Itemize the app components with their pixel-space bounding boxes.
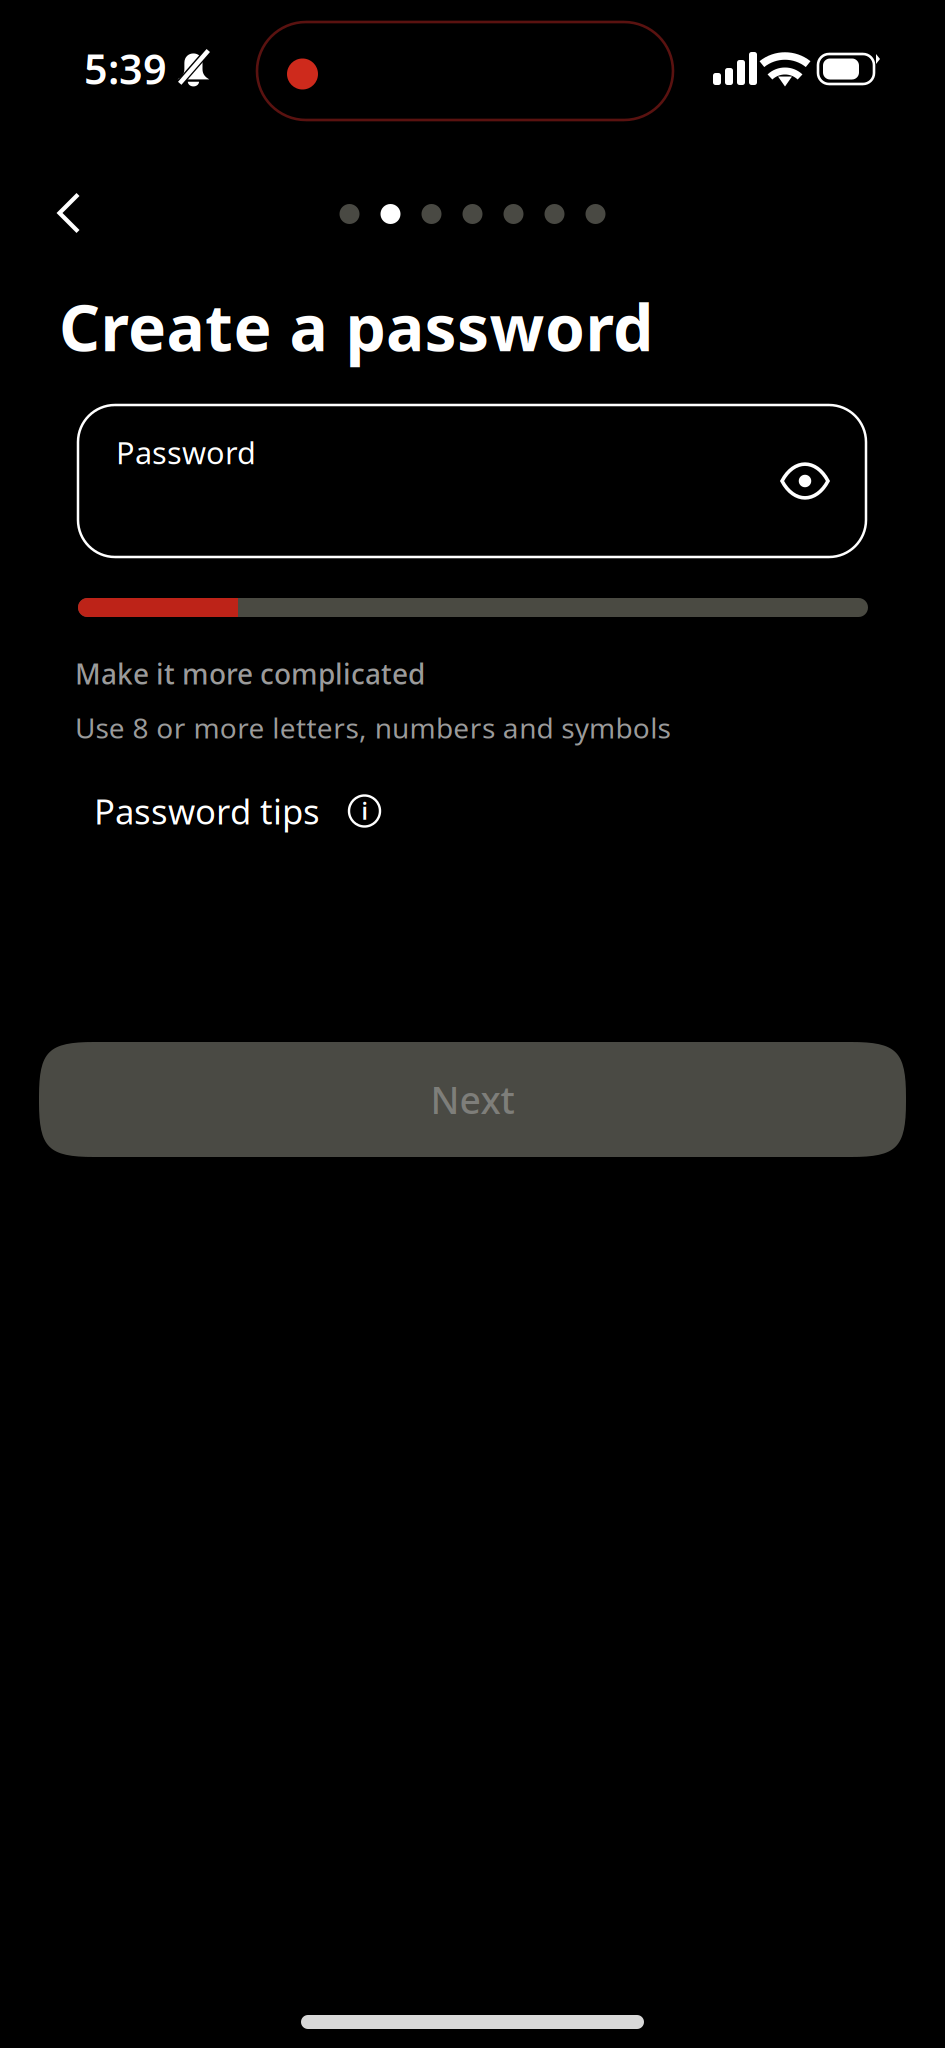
staticText: i xyxy=(361,796,367,826)
staticText: Password tips xyxy=(94,788,320,834)
button[interactable]: Password tips xyxy=(94,786,394,836)
staticText: Make it more complicated xyxy=(75,655,425,692)
button[interactable]: Show password xyxy=(766,442,844,520)
staticText: Next xyxy=(430,1075,514,1124)
button[interactable]: Next xyxy=(39,1042,906,1157)
staticText: Password xyxy=(116,432,256,473)
staticText: 5:39 xyxy=(84,41,167,96)
button[interactable]: Back xyxy=(25,169,113,257)
staticText: Use 8 or more letters, numbers and symbo… xyxy=(75,709,671,746)
staticText: Create a password xyxy=(59,284,653,369)
